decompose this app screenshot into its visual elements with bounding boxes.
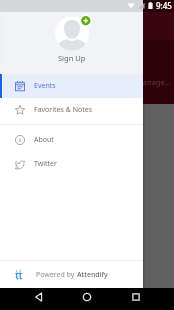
staticText: Attendify bbox=[77, 270, 108, 280]
staticText: Manage... bbox=[136, 77, 171, 87]
staticText: Favorites & Notes bbox=[34, 105, 93, 115]
staticText: 9:45 bbox=[156, 0, 172, 11]
button[interactable]: Home bbox=[77, 287, 97, 307]
staticText: Powered by bbox=[36, 270, 77, 280]
staticText: About bbox=[34, 135, 54, 145]
staticText: Twitter bbox=[34, 159, 57, 169]
button[interactable]: Twitter bbox=[0, 152, 143, 176]
button[interactable]: About bbox=[0, 128, 143, 152]
button[interactable]: Events bbox=[0, 74, 143, 98]
staticText: Sign Up bbox=[58, 53, 86, 63]
staticText: Events bbox=[34, 81, 56, 91]
button[interactable]: Favorites & Notes bbox=[0, 98, 143, 122]
button[interactable]: Back bbox=[29, 287, 49, 307]
button[interactable]: Recents bbox=[126, 287, 146, 307]
